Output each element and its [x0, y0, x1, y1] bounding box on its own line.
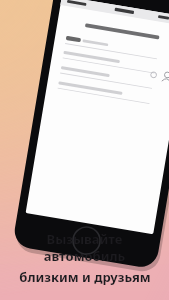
staticText: близким и друзьям	[19, 268, 151, 286]
button[interactable]: Phone showing taxi order screen	[0, 0, 169, 300]
staticText: Вызывайте автомобиль	[14, 230, 155, 265]
